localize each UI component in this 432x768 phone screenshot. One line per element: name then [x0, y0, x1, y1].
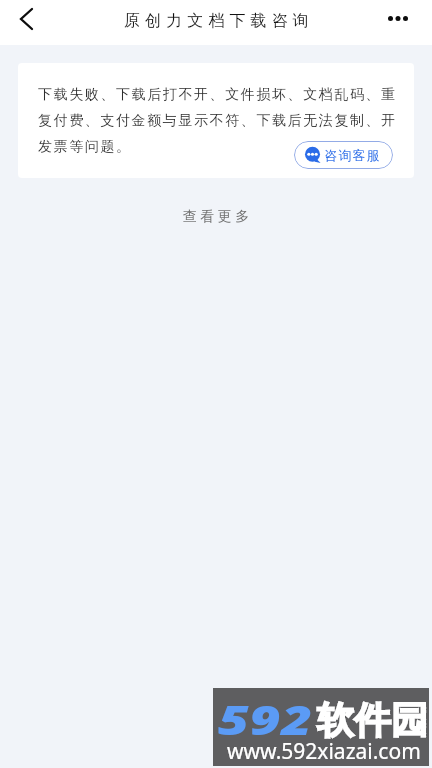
button[interactable]: Back: [6, 0, 46, 38]
staticText: 592: [218, 691, 313, 743]
button[interactable]: 查看更多: [171, 200, 261, 234]
staticText: www.592xiazai.com: [227, 737, 421, 766]
staticText: 软件园: [317, 697, 428, 744]
button[interactable]: 咨询客服: [294, 141, 393, 169]
staticText: 原创力文档下载咨询: [124, 11, 314, 31]
staticText: 咨询客服: [324, 147, 380, 163]
staticText: 下载失败、下载后打不开、文件损坏、文档乱码、重复付费、支付金额与显示不符、下载后…: [38, 86, 400, 156]
button[interactable]: More options: [376, 0, 420, 37]
